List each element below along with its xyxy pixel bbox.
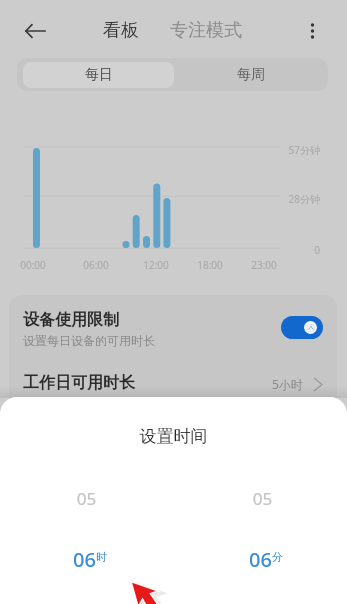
- staticText: 时: [96, 550, 107, 564]
- staticText: 05: [232, 487, 293, 510]
- staticText: 23:00: [239, 258, 289, 272]
- staticText: 设置每日设备的可用时长: [23, 333, 155, 348]
- staticText: 00:00: [8, 258, 58, 272]
- staticText: 每周: [237, 66, 265, 84]
- button[interactable]: 06: [73, 546, 107, 573]
- staticText: 分: [272, 550, 283, 564]
- staticText: 0: [260, 243, 320, 257]
- staticText: 专注模式: [170, 19, 242, 42]
- staticText: 看板: [103, 19, 139, 42]
- staticText: 28分钟: [260, 192, 320, 206]
- staticText: 设备使用限制: [23, 310, 119, 330]
- button[interactable]: More options: [294, 11, 334, 51]
- button[interactable]: 设备使用限制: [9, 295, 337, 361]
- staticText: 每日: [85, 66, 113, 84]
- button[interactable]: Toggle device usage limit: [281, 316, 323, 339]
- button[interactable]: 看板: [103, 19, 139, 42]
- button[interactable]: Back: [15, 11, 55, 51]
- staticText: 工作日可用时长: [23, 373, 135, 393]
- button[interactable]: 专注模式: [170, 19, 242, 42]
- button[interactable]: 工作日可用时长: [9, 361, 337, 409]
- staticText: 设置时间: [0, 426, 347, 447]
- staticText: 5小时: [272, 376, 303, 392]
- button[interactable]: 每日: [23, 62, 174, 88]
- staticText: 06: [249, 546, 272, 573]
- staticText: 06:00: [71, 258, 121, 272]
- staticText: 57分钟: [260, 143, 320, 157]
- staticText: 18:00: [185, 258, 235, 272]
- button[interactable]: 每周: [174, 58, 328, 91]
- button[interactable]: 06: [249, 546, 283, 573]
- staticText: 06: [73, 546, 96, 573]
- staticText: 12:00: [131, 258, 181, 272]
- staticText: 05: [56, 487, 117, 510]
